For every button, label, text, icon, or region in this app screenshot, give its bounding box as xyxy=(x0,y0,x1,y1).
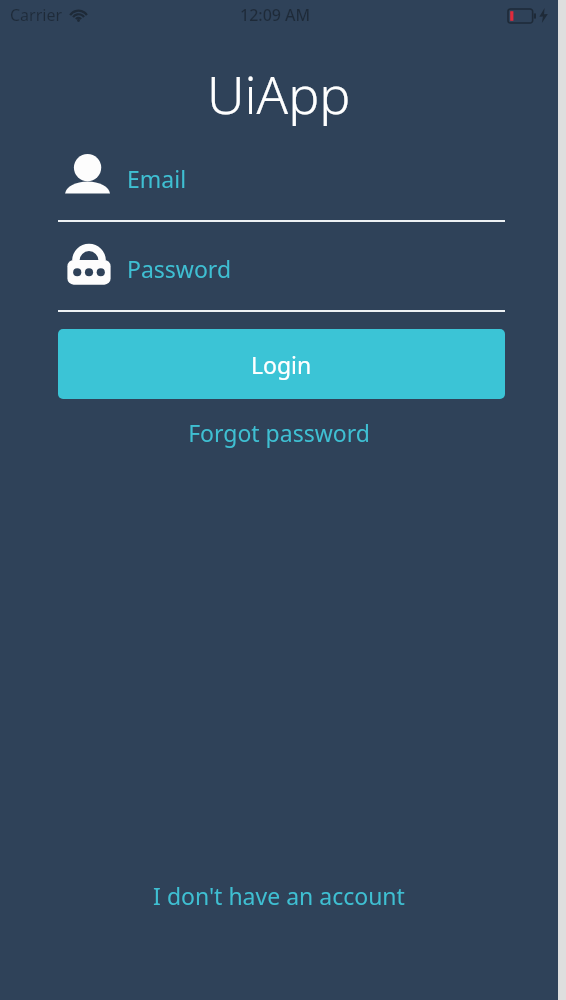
staticText: Password xyxy=(127,253,232,284)
other: Email xyxy=(65,152,113,204)
other: Password xyxy=(65,242,113,294)
button[interactable]: Forgot password xyxy=(0,412,558,452)
staticText: Carrier xyxy=(10,4,63,26)
staticText: 12:09 AM xyxy=(240,4,311,26)
staticText: Forgot password xyxy=(188,417,370,448)
button[interactable]: Password xyxy=(58,240,505,312)
button[interactable]: Login xyxy=(58,329,505,399)
button[interactable]: I don't have an account xyxy=(0,874,558,916)
staticText: UiApp xyxy=(207,58,351,129)
staticText: I don't have an account xyxy=(153,880,405,911)
staticText: Login xyxy=(251,349,312,380)
staticText: Email xyxy=(127,163,187,194)
button[interactable]: Email xyxy=(58,150,505,222)
